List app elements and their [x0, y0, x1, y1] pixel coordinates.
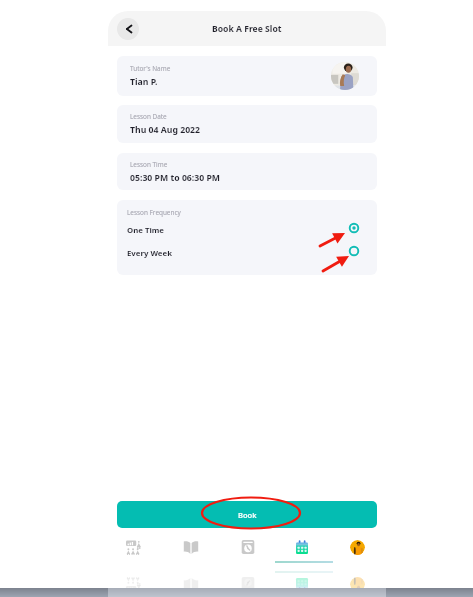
button[interactable]: Library — [169, 531, 213, 563]
staticText: Every Week — [127, 248, 172, 259]
staticText: Thu 04 Aug 2022 — [130, 124, 201, 136]
button[interactable]: Lesson Date — [117, 105, 377, 143]
staticText: Tutor's Name — [130, 64, 171, 73]
button[interactable]: Back — [117, 18, 139, 40]
staticText: 05:30 PM to 06:30 PM — [130, 172, 221, 184]
staticText: Lesson Date — [130, 112, 167, 121]
staticText: One Time — [127, 225, 165, 236]
staticText: Book A Free Slot — [212, 23, 282, 35]
staticText: Lesson Frequency — [127, 208, 181, 217]
staticText: Lesson Time — [130, 160, 168, 169]
staticText: Book — [238, 510, 257, 520]
button[interactable]: Lesson Time — [117, 153, 377, 190]
button[interactable]: Tutor's Name — [117, 56, 377, 96]
button[interactable]: Every Week — [347, 244, 361, 258]
button[interactable]: One Time selected — [347, 221, 361, 235]
button[interactable]: Classes — [112, 531, 156, 563]
button[interactable]: Profile — [335, 531, 379, 563]
staticText: Tian P. — [130, 76, 158, 88]
button[interactable]: History — [226, 531, 270, 563]
button[interactable]: Book — [117, 501, 377, 528]
button[interactable]: Calendar — [280, 531, 324, 563]
